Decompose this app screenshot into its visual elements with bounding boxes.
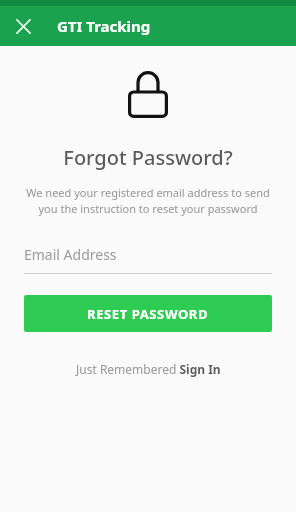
staticText: Just Remembered Sign In: [76, 361, 221, 377]
staticText: Forgot Password?: [63, 144, 233, 171]
button[interactable]: Close: [10, 13, 36, 39]
staticText: RESET PASSWORD: [87, 305, 209, 323]
button[interactable]: Email Address: [24, 245, 272, 274]
button[interactable]: Just Remembered Sign In: [68, 357, 229, 381]
staticText: We need your registered email address to…: [26, 185, 270, 217]
staticText: Email Address: [24, 245, 117, 264]
button[interactable]: RESET PASSWORD: [24, 295, 272, 332]
staticText: GTI Tracking: [57, 16, 151, 36]
